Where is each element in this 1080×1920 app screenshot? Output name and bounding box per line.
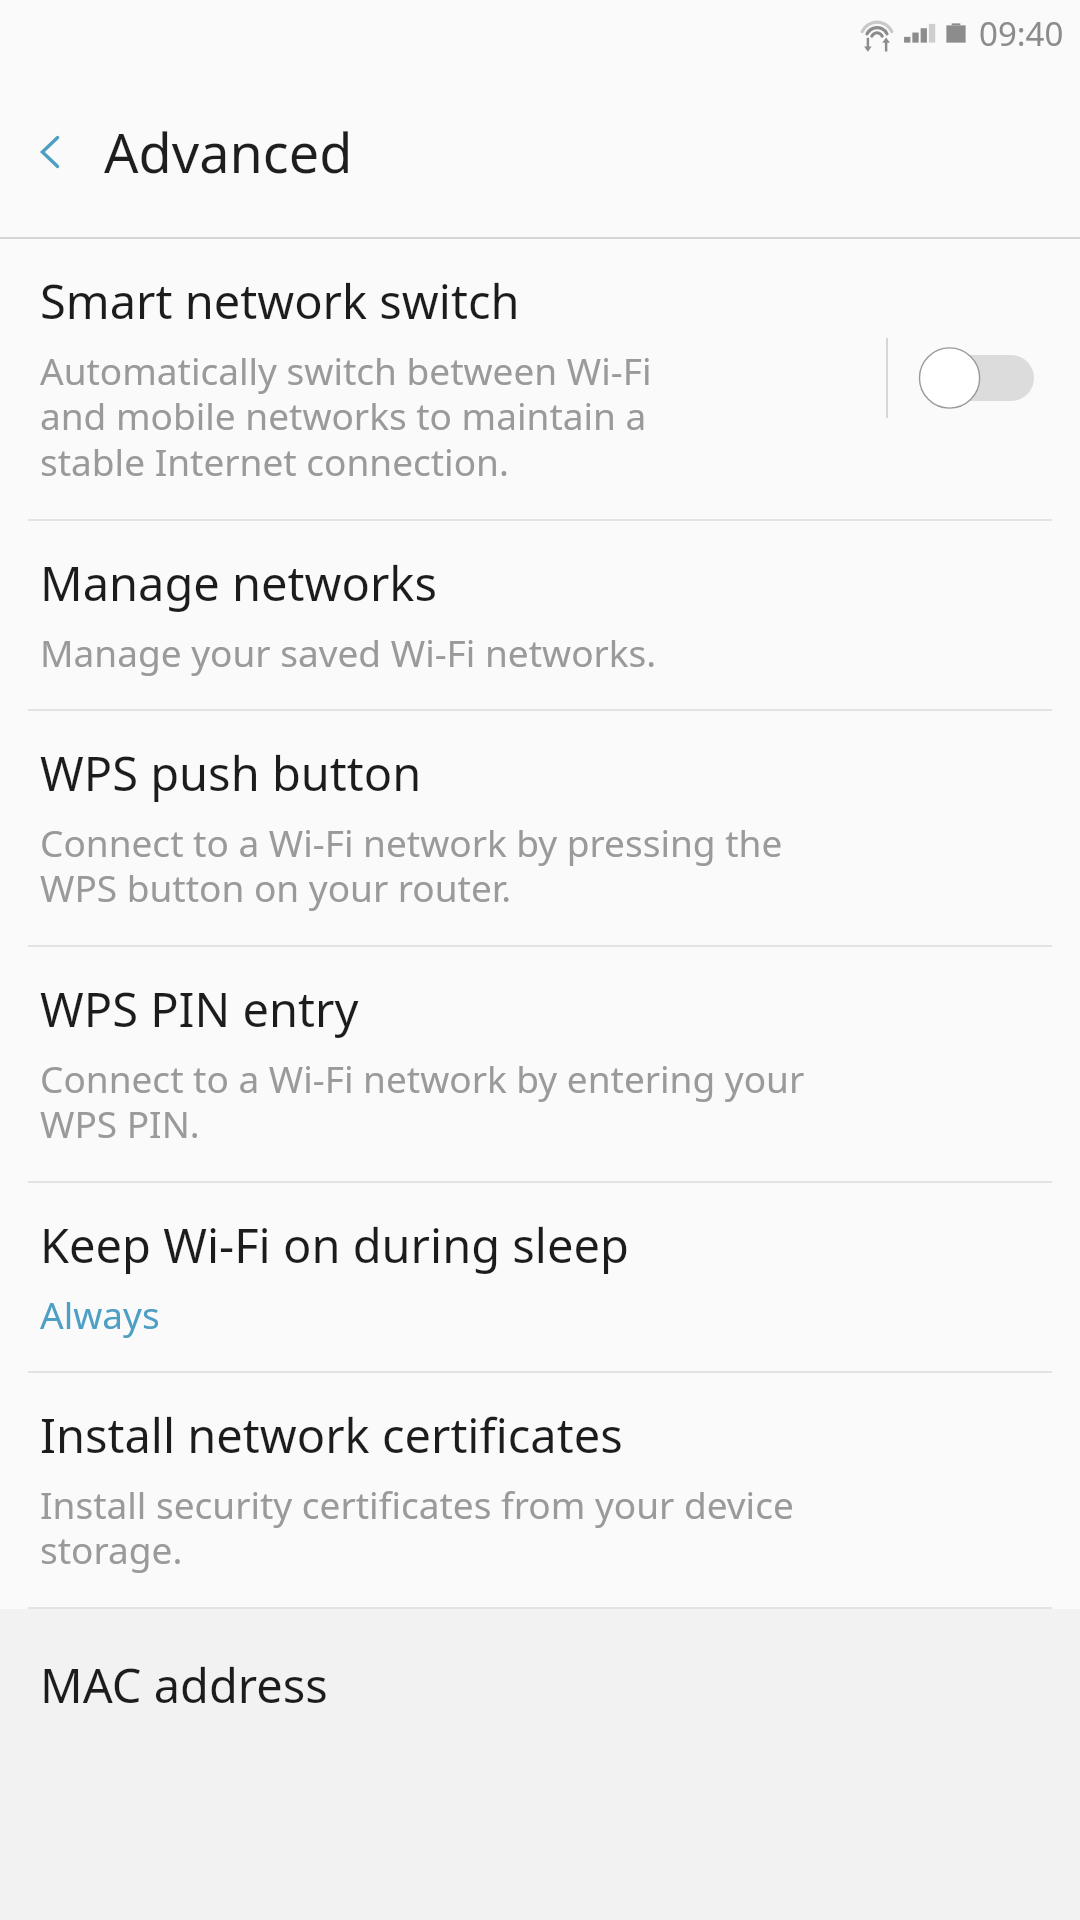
button[interactable]: WPS PIN entry [0, 947, 1080, 1181]
staticText: Advanced [104, 115, 353, 189]
staticText: Keep Wi-Fi on during sleep [40, 1213, 629, 1277]
staticText: Install security certificates from your … [40, 1479, 794, 1575]
staticText: Manage networks [40, 551, 437, 615]
staticText: Install network certificates [40, 1403, 623, 1467]
button[interactable]: WPS push button [0, 711, 1080, 945]
button[interactable]: Back [14, 114, 90, 190]
staticText: MAC address [40, 1653, 328, 1717]
button[interactable]: Keep Wi-Fi on during sleep [0, 1183, 1080, 1371]
staticText: Manage your saved Wi-Fi networks. [40, 627, 657, 677]
staticText: 09:40 [979, 11, 1064, 56]
button[interactable]: Smart network switch toggle [888, 334, 1056, 422]
staticText: WPS push button [40, 741, 422, 805]
button[interactable]: Smart network switch [0, 239, 1080, 519]
staticText: Smart network switch [40, 269, 520, 333]
button[interactable]: Manage networks [0, 521, 1080, 709]
staticText: Automatically switch between Wi-Fi and m… [40, 345, 652, 487]
staticText: Always [40, 1289, 160, 1339]
staticText: Connect to a Wi-Fi network by entering y… [40, 1053, 805, 1149]
button[interactable]: Install network certificates [0, 1373, 1080, 1607]
staticText: WPS PIN entry [40, 977, 359, 1041]
staticText: Connect to a Wi-Fi network by pressing t… [40, 817, 783, 913]
button[interactable]: MAC address [0, 1609, 1080, 1717]
